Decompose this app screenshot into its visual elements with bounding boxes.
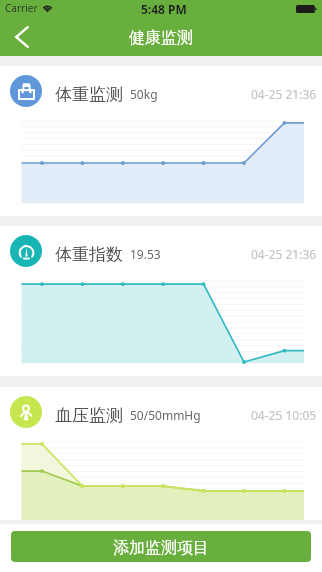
- staticText: 04-25 21:36: [251, 86, 317, 102]
- button[interactable]: 体重指数: [0, 226, 322, 376]
- staticText: 5:48 PM: [141, 1, 187, 17]
- staticText: 50/50mmHg: [130, 407, 201, 423]
- staticText: 体重监测: [55, 84, 123, 105]
- button[interactable]: 体重监测: [0, 66, 322, 216]
- staticText: 19.53: [130, 246, 161, 262]
- staticText: 健康监测: [129, 28, 193, 48]
- staticText: 体重指数: [55, 244, 123, 265]
- button[interactable]: Back: [0, 20, 44, 56]
- button[interactable]: 添加监测项目: [11, 531, 311, 562]
- staticText: 50kg: [130, 86, 158, 102]
- staticText: 04-25 10:05: [251, 407, 317, 423]
- staticText: 添加监测项目: [113, 538, 209, 558]
- staticText: 血压监测: [55, 405, 123, 426]
- staticText: 04-25 21:36: [251, 246, 317, 262]
- staticText: Carrier: [5, 1, 38, 15]
- button[interactable]: 血压监测: [0, 387, 322, 520]
